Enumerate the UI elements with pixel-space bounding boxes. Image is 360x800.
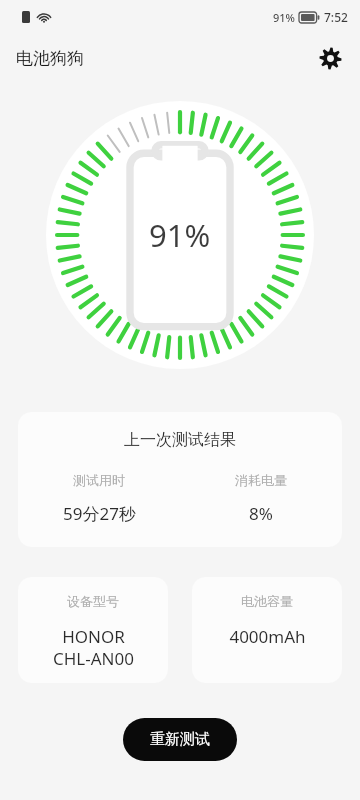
staticText: 4000mAh [229, 625, 306, 648]
button[interactable]: 设备型号 [18, 577, 168, 683]
staticText: 重新测试 [150, 730, 210, 749]
staticText: 91% [149, 214, 211, 256]
staticText: 上一次测试结果 [124, 430, 236, 450]
staticText: 电池狗狗 [16, 48, 84, 69]
button[interactable]: Settings [314, 42, 346, 74]
staticText: 59分27秒 [63, 502, 136, 525]
staticText: 91% [273, 10, 295, 25]
staticText: 7:52 [324, 9, 348, 25]
staticText: 电池容量 [241, 593, 293, 609]
staticText: HONOR CHL-AN00 [53, 625, 134, 670]
button[interactable]: 上一次测试结果 [18, 412, 342, 547]
staticText: 8% [249, 502, 273, 525]
button[interactable]: 重新测试 [123, 718, 237, 761]
staticText: 测试用时 [73, 472, 125, 488]
button[interactable]: 电池容量 [192, 577, 342, 683]
staticText: 设备型号 [67, 593, 119, 609]
staticText: 消耗电量 [235, 472, 287, 488]
